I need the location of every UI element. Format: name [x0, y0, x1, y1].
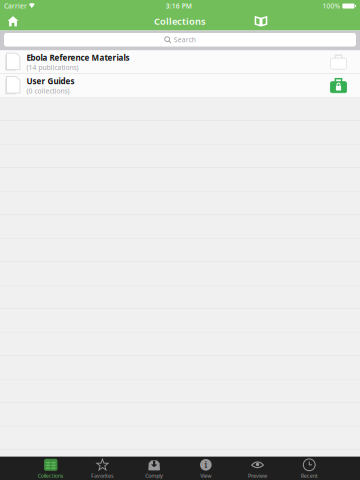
- button[interactable]: Ebola Reference Materials: [0, 50, 360, 73]
- staticText: 100%: [323, 2, 341, 10]
- button[interactable]: Collections: [25, 457, 77, 480]
- staticText: Comply: [145, 472, 163, 479]
- staticText: Carrier: [4, 2, 27, 10]
- staticText: i: [204, 458, 207, 471]
- staticText: 3:16 PM: [166, 2, 192, 10]
- button[interactable]: Preview: [232, 457, 283, 480]
- button[interactable]: User Guides: [0, 74, 360, 97]
- staticText: Ebola Reference Materials: [26, 52, 129, 63]
- staticText: View: [200, 472, 211, 479]
- staticText: Favorites: [91, 472, 114, 479]
- staticText: (0 collections): [26, 86, 69, 95]
- button[interactable]: Favorites: [77, 457, 128, 480]
- staticText: (14 publications): [26, 63, 78, 72]
- button[interactable]: Library: [248, 12, 274, 30]
- staticText: Preview: [248, 472, 267, 479]
- staticText: User Guides: [26, 76, 74, 86]
- staticText: Search: [174, 35, 196, 44]
- button[interactable]: Search: [4, 33, 356, 46]
- button[interactable]: Recent: [283, 457, 335, 480]
- staticText: Collections: [154, 15, 206, 27]
- staticText: Recent: [301, 472, 318, 479]
- button[interactable]: Comply: [128, 457, 180, 480]
- button[interactable]: i: [180, 457, 232, 480]
- button[interactable]: Home: [0, 12, 26, 30]
- staticText: Collections: [38, 472, 64, 479]
